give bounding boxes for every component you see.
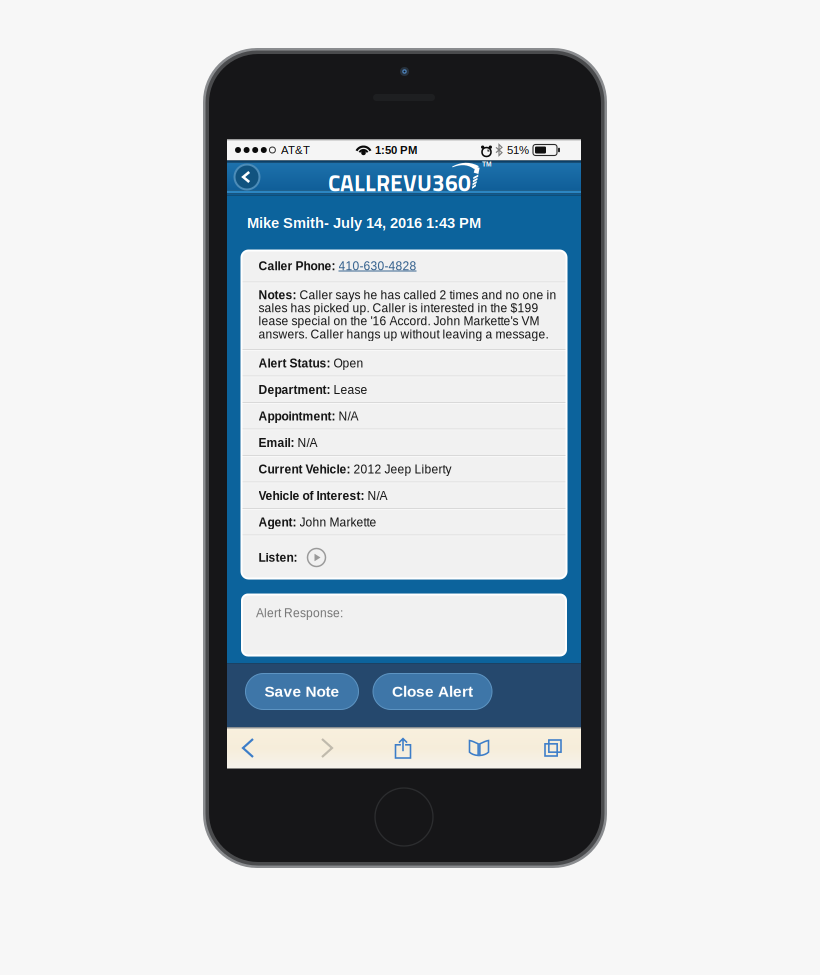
button[interactable]: Tabs: [530, 727, 576, 768]
staticText: 51%: [507, 144, 529, 156]
staticText: Caller Phone:: [258, 259, 338, 273]
staticText: Close Alert: [392, 683, 473, 700]
staticText: Agent:: [258, 515, 299, 529]
button[interactable]: Close Alert: [373, 673, 492, 709]
staticText: Current Vehicle:: [258, 462, 353, 476]
staticText: Notes: Caller says he has called 2 times…: [258, 288, 556, 341]
button[interactable]: Save Note: [245, 673, 358, 709]
staticText: Save Note: [264, 683, 339, 700]
button[interactable]: Alert Response:: [242, 594, 566, 655]
staticText: Appointment:: [258, 409, 338, 423]
button[interactable]: Back: [225, 727, 271, 768]
staticText: TM: [482, 160, 492, 168]
staticText: AT&T: [281, 144, 310, 156]
button[interactable]: Play recording: [304, 545, 328, 569]
staticText: Mike Smith- July 14, 2016 1:43 PM: [247, 215, 481, 231]
button[interactable]: Forward: [304, 727, 350, 768]
staticText: N/A: [297, 436, 317, 449]
staticText: CALLREVU360: [328, 165, 471, 200]
button[interactable]: Share: [380, 727, 426, 768]
staticText: 2012 Jeep Liberty: [353, 462, 451, 476]
staticText: Listen:: [258, 551, 297, 564]
staticText: 410-630-4828: [338, 259, 416, 273]
staticText: Department:: [258, 383, 333, 396]
staticText: Vehicle of Interest:: [258, 489, 367, 502]
staticText: N/A: [367, 489, 387, 502]
staticText: Email:: [258, 436, 297, 449]
staticText: N/A: [338, 409, 358, 423]
staticText: Alert Status:: [258, 356, 333, 370]
staticText: John Markette: [299, 515, 376, 529]
button[interactable]: Bookmarks: [456, 727, 502, 768]
staticText: Lease: [333, 383, 367, 396]
button[interactable]: Back: [228, 160, 266, 193]
button[interactable]: 410-630-4828: [338, 259, 416, 273]
staticText: Alert Response:: [256, 606, 343, 620]
staticText: Open: [333, 356, 363, 370]
staticText: 1:50 PM: [375, 144, 417, 156]
